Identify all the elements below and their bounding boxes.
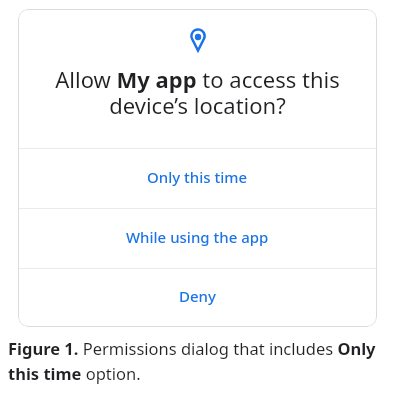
staticText: Allow My app to access this device’s loc… <box>18 64 377 121</box>
button[interactable]: Deny <box>18 269 377 327</box>
staticText: Only this time <box>147 167 248 187</box>
button[interactable]: Only this time <box>18 149 377 208</box>
staticText: While using the app <box>126 227 269 247</box>
button[interactable]: While using the app <box>18 209 377 268</box>
staticText: Figure 1. Permissions dialog that includ… <box>8 337 393 385</box>
staticText: Deny <box>179 286 216 306</box>
